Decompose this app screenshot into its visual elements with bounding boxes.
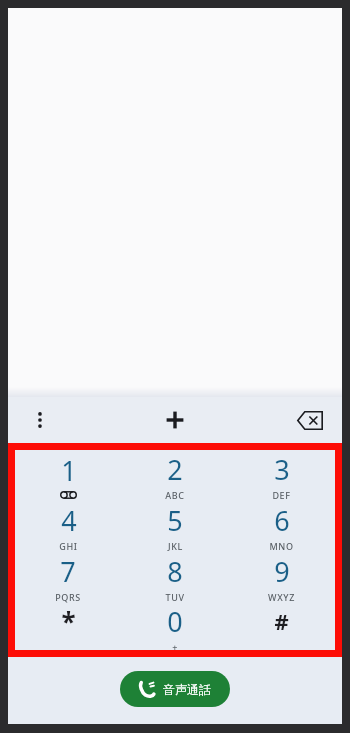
staticText: PQRS bbox=[55, 591, 81, 603]
button[interactable]: 3 bbox=[228, 450, 335, 501]
staticText: WXYZ bbox=[268, 591, 295, 603]
button[interactable]: Add plus bbox=[72, 397, 278, 443]
button[interactable]: 5 bbox=[121, 501, 228, 552]
staticText: 5 bbox=[167, 502, 183, 539]
staticText: * bbox=[61, 604, 76, 639]
staticText: + bbox=[172, 641, 178, 650]
staticText: 0 bbox=[167, 603, 183, 640]
button[interactable]: 2 bbox=[121, 450, 228, 501]
staticText: DEF bbox=[272, 489, 291, 501]
staticText: ABC bbox=[165, 489, 185, 501]
staticText: # bbox=[274, 606, 289, 636]
button[interactable]: 9 bbox=[228, 552, 335, 603]
button[interactable]: 音声通話 bbox=[120, 671, 230, 707]
staticText: 8 bbox=[167, 553, 183, 590]
staticText: 9 bbox=[274, 553, 290, 590]
staticText: 6 bbox=[274, 502, 290, 539]
button[interactable]: 8 bbox=[121, 552, 228, 603]
staticText: 音声通話 bbox=[163, 682, 211, 697]
staticText: TUV bbox=[165, 591, 185, 603]
button[interactable]: 7 bbox=[15, 552, 121, 603]
staticText: 2 bbox=[167, 451, 183, 488]
button[interactable]: Backspace bbox=[278, 397, 342, 443]
button[interactable]: 1 bbox=[15, 450, 121, 501]
button[interactable]: 6 bbox=[228, 501, 335, 552]
button[interactable]: 0 bbox=[121, 603, 228, 650]
staticText: MNO bbox=[269, 540, 294, 552]
staticText: GHI bbox=[59, 540, 78, 552]
staticText: 7 bbox=[60, 553, 76, 590]
button[interactable]: # bbox=[228, 603, 335, 650]
staticText: JKL bbox=[168, 540, 183, 552]
staticText: 3 bbox=[274, 451, 290, 488]
staticText: 4 bbox=[61, 502, 77, 539]
button[interactable]: 4 bbox=[15, 501, 121, 552]
button[interactable]: More options bbox=[8, 397, 72, 443]
staticText: 1 bbox=[61, 452, 77, 489]
button[interactable]: * bbox=[15, 603, 121, 650]
